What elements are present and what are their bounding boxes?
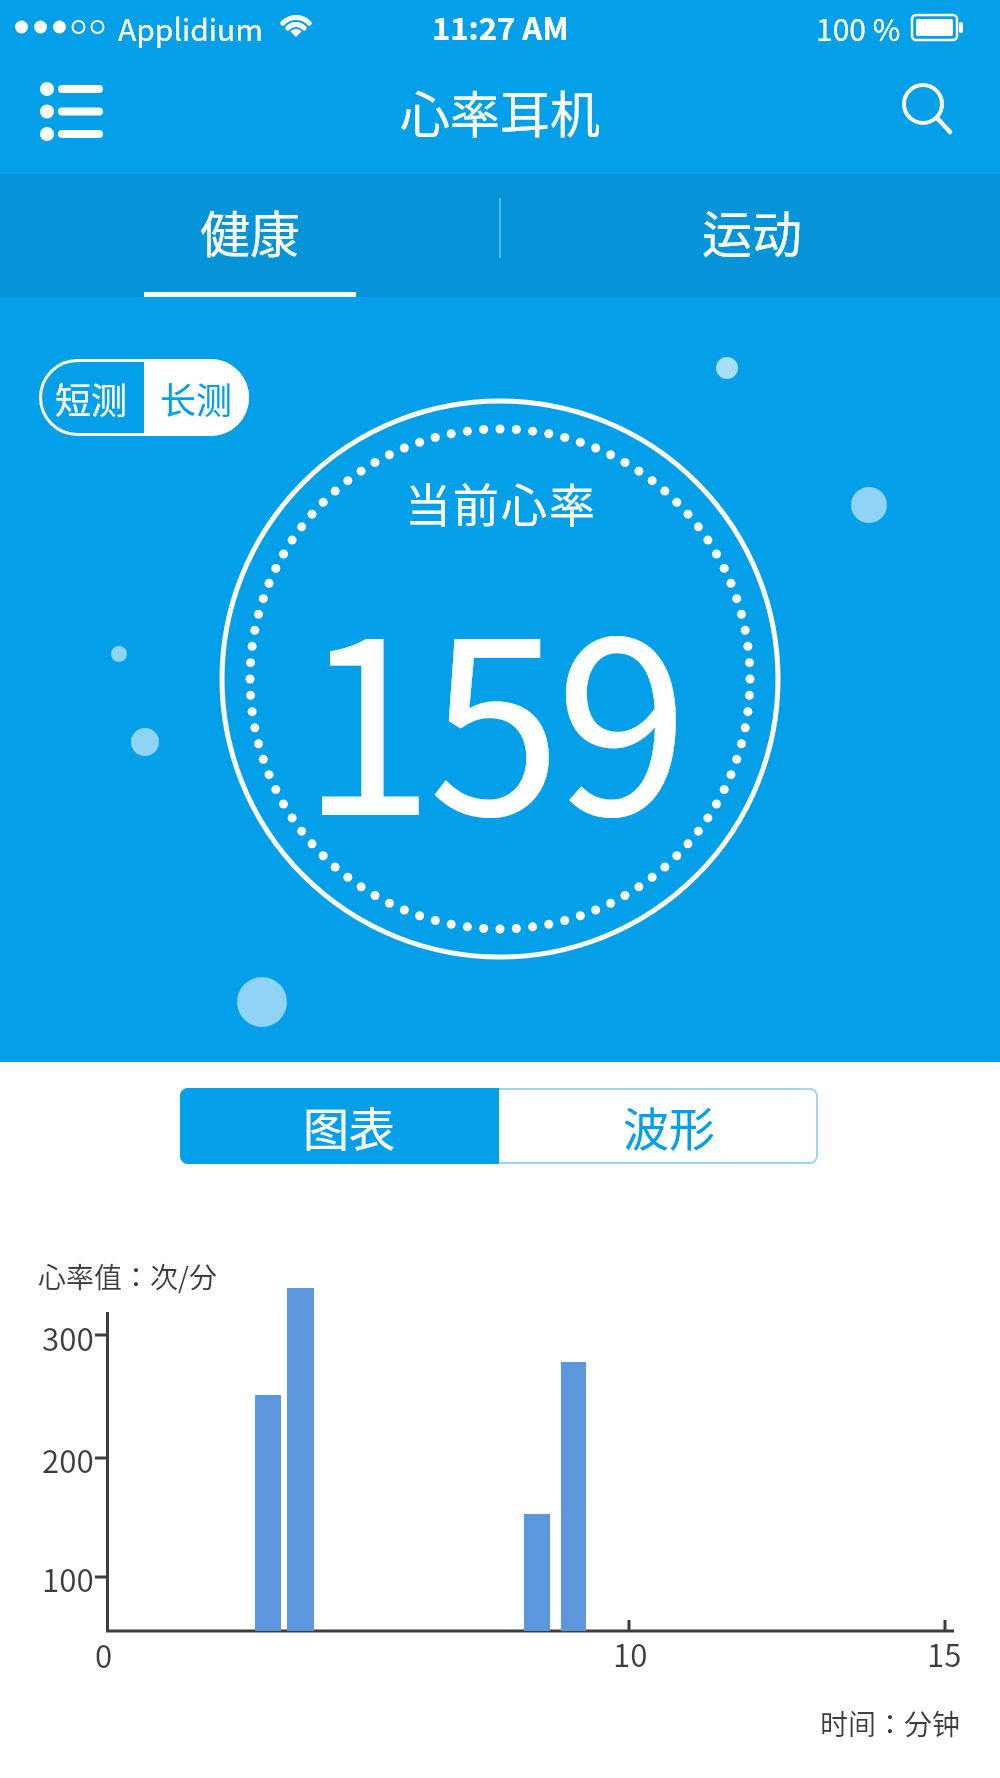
staticText: 200 (42, 1437, 94, 1482)
staticText: 心率值：次/分 (38, 1256, 217, 1297)
staticText: 运动 (702, 195, 802, 267)
staticText: 15 (927, 1631, 962, 1676)
staticText: 时间：分钟 (820, 1703, 961, 1744)
staticText: 长测 (160, 372, 233, 424)
staticText: 短测 (55, 372, 128, 424)
staticText: 图表 (303, 1093, 395, 1160)
staticText: 心率耳机 (400, 75, 600, 147)
staticText: 波形 (623, 1093, 715, 1160)
staticText: 当前心率 (404, 469, 596, 536)
staticText: 0 (95, 1632, 113, 1677)
staticText: 159 (301, 537, 683, 885)
staticText: 10 (613, 1631, 648, 1676)
staticText: 100 (42, 1556, 94, 1601)
staticText: 300 (42, 1315, 94, 1360)
staticText: 健康 (200, 195, 300, 267)
staticText: 100 % (816, 6, 901, 49)
staticText: Applidium (118, 6, 264, 49)
staticText: 11:27 AM (432, 4, 569, 49)
